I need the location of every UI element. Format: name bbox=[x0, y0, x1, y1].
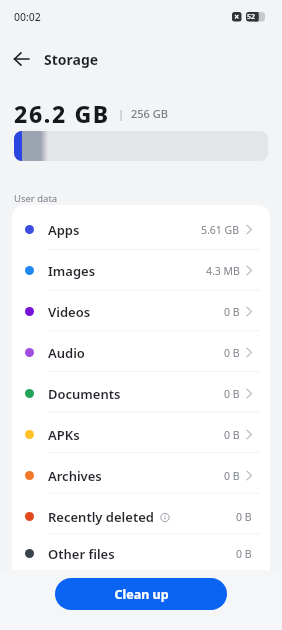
staticText: 0 B bbox=[224, 428, 240, 442]
button[interactable]: Audio bbox=[12, 332, 270, 373]
staticText: Images bbox=[48, 262, 96, 280]
staticText: Clean up bbox=[114, 586, 169, 603]
staticText: Archives bbox=[48, 467, 102, 485]
staticText: 0 B bbox=[224, 305, 240, 319]
staticText: 26.2 GB bbox=[14, 98, 110, 129]
staticText: Other files bbox=[48, 545, 115, 563]
staticText: Videos bbox=[48, 303, 91, 321]
staticText: Audio bbox=[48, 344, 85, 362]
button[interactable]: APKs bbox=[12, 414, 270, 455]
button[interactable]: Videos bbox=[12, 291, 270, 332]
button[interactable]: Documents bbox=[12, 373, 270, 414]
staticText: Documents bbox=[48, 385, 121, 403]
button[interactable]: Archives bbox=[12, 455, 270, 496]
staticText: Apps bbox=[48, 221, 80, 239]
staticText: 0 B bbox=[224, 387, 240, 401]
staticText: 0 B bbox=[236, 510, 252, 524]
staticText: 0 B bbox=[224, 469, 240, 483]
staticText: 5.61 GB bbox=[201, 223, 240, 237]
button[interactable]: Images bbox=[12, 250, 270, 291]
staticText: User data bbox=[14, 192, 58, 205]
button[interactable]: Apps bbox=[12, 209, 270, 250]
staticText: 4.3 MB bbox=[206, 264, 240, 278]
button[interactable]: Other files bbox=[12, 537, 270, 570]
button[interactable]: Recently deleted bbox=[12, 496, 270, 537]
staticText: APKs bbox=[48, 426, 80, 444]
staticText: Recently deleted bbox=[48, 508, 154, 526]
button[interactable]: Clean up bbox=[55, 578, 227, 610]
staticText: Storage bbox=[44, 50, 99, 69]
staticText: 0 B bbox=[224, 346, 240, 360]
staticText: 00:02 bbox=[14, 10, 41, 24]
staticText: 0 B bbox=[236, 547, 252, 561]
button[interactable] bbox=[8, 46, 38, 74]
staticText: 256 GB bbox=[131, 106, 168, 121]
staticText: | bbox=[118, 106, 125, 121]
staticText: 52 bbox=[247, 12, 256, 22]
